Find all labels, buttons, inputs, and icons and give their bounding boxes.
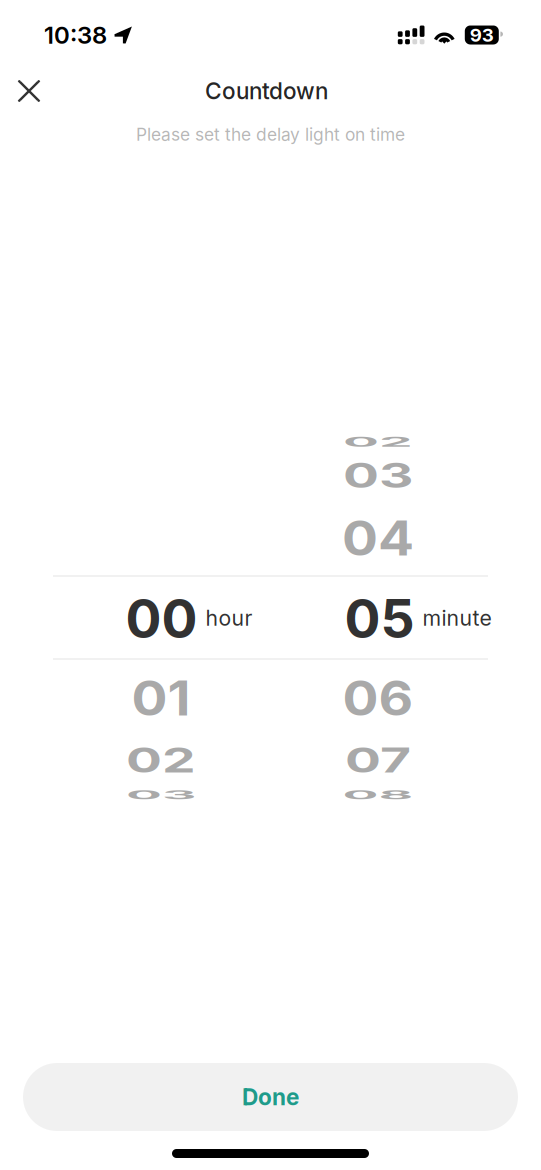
staticText: 03: [343, 443, 413, 508]
staticText: 08: [342, 763, 413, 827]
staticText: Please set the delay light on time: [136, 124, 405, 145]
staticText: 03: [126, 763, 196, 827]
staticText: 05: [344, 586, 414, 651]
button[interactable]: Close: [0, 68, 56, 114]
staticText: Done: [242, 1083, 299, 1111]
staticText: 01: [131, 666, 190, 730]
staticText: 00: [125, 586, 197, 651]
staticText: 02: [126, 728, 196, 792]
staticText: Countdown: [205, 77, 328, 105]
button[interactable]: minute 05: [270, 415, 541, 815]
staticText: hour: [205, 605, 252, 631]
button[interactable]: hour 00: [0, 415, 270, 815]
button[interactable]: Done: [23, 1063, 518, 1131]
staticText: 02: [343, 410, 413, 474]
staticText: minute: [422, 605, 491, 631]
staticText: 10:38: [44, 20, 107, 49]
staticText: 07: [345, 728, 411, 792]
staticText: 06: [342, 666, 413, 730]
staticText: 04: [342, 506, 414, 570]
staticText: 93: [470, 24, 494, 46]
